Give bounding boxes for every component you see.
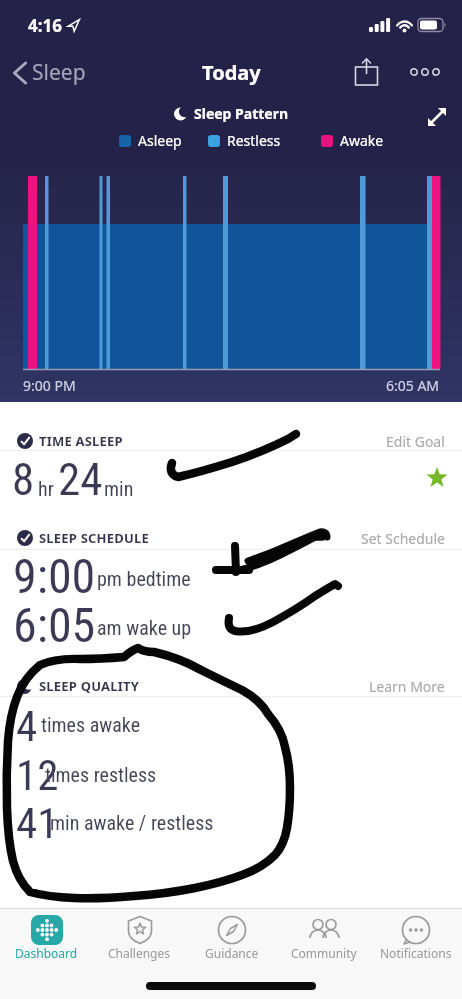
staticText: 4:16	[28, 14, 62, 37]
button[interactable]: Sleep	[12, 58, 86, 87]
button[interactable]: Dashboard	[0, 915, 93, 961]
staticText: Dashboard	[15, 945, 78, 961]
staticText: TIME ASLEEP	[39, 432, 123, 450]
button[interactable]: Community	[278, 915, 370, 961]
staticText: times restless	[45, 763, 157, 786]
staticText: 9:00	[13, 548, 96, 604]
staticText: Restless	[227, 131, 281, 150]
staticText: SLEEP QUALITY	[39, 677, 139, 695]
staticText: 4	[16, 701, 38, 751]
staticText: min awake / restless	[50, 811, 214, 834]
button[interactable]: Edit Goal	[386, 432, 445, 451]
button[interactable]	[410, 67, 440, 77]
staticText: Sleep	[32, 58, 86, 87]
staticText: Today	[202, 59, 261, 86]
staticText: Asleep	[138, 131, 182, 150]
staticText: times awake	[41, 713, 141, 736]
staticText: 12	[16, 750, 59, 800]
staticText: 6:05	[13, 597, 96, 653]
button[interactable]: Challenges	[93, 915, 186, 961]
button[interactable]	[426, 106, 448, 128]
button[interactable]: Guidance	[186, 915, 278, 961]
staticText: 24	[58, 453, 103, 506]
staticText: Guidance	[205, 945, 259, 961]
staticText: Awake	[340, 131, 384, 150]
staticText: hr	[38, 477, 54, 500]
button[interactable]: Learn More	[369, 677, 445, 696]
staticText: 8	[12, 453, 35, 506]
button[interactable]: Notifications	[370, 915, 462, 961]
staticText: SLEEP SCHEDULE	[39, 529, 149, 547]
staticText: Community	[291, 945, 357, 961]
staticText: 9:00 PM	[23, 376, 76, 395]
staticText: Challenges	[108, 945, 171, 961]
staticText: Notifications	[380, 945, 452, 961]
button[interactable]	[355, 58, 378, 86]
staticText: 41	[16, 798, 59, 848]
staticText: pm bedtime	[97, 567, 191, 590]
staticText: 6:05 AM	[386, 376, 440, 395]
staticText: Sleep Pattern	[194, 104, 289, 123]
staticText: min	[104, 477, 134, 500]
button[interactable]: Set Schedule	[361, 529, 445, 548]
staticText: am wake up	[97, 616, 192, 639]
